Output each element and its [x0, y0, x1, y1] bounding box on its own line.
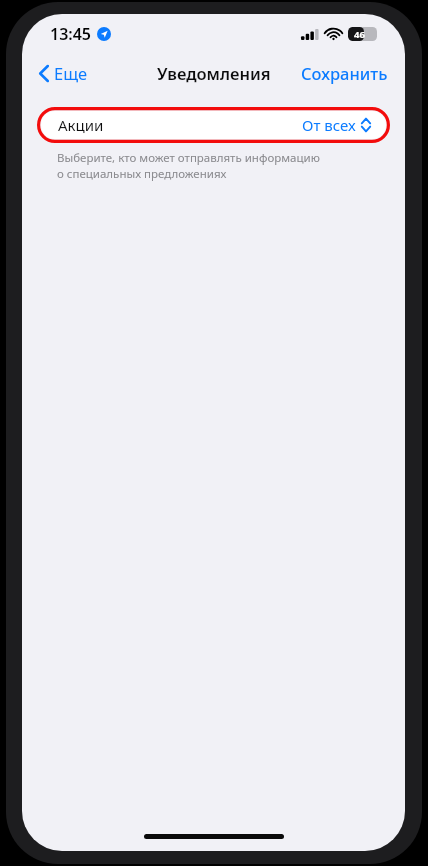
button[interactable]: Акции [41, 111, 386, 139]
staticText: Еще [54, 62, 88, 84]
staticText: 46 [354, 28, 365, 41]
staticText: Выберите, кто может отправлять информаци… [57, 150, 320, 181]
staticText: Уведомления [157, 62, 271, 84]
staticText: От всех [302, 115, 356, 135]
staticText: 13:45 [50, 23, 92, 45]
staticText: Акции [58, 115, 104, 135]
button[interactable]: Еще [34, 58, 93, 88]
staticText: Сохранить [301, 62, 388, 84]
button[interactable]: Сохранить [296, 58, 393, 88]
